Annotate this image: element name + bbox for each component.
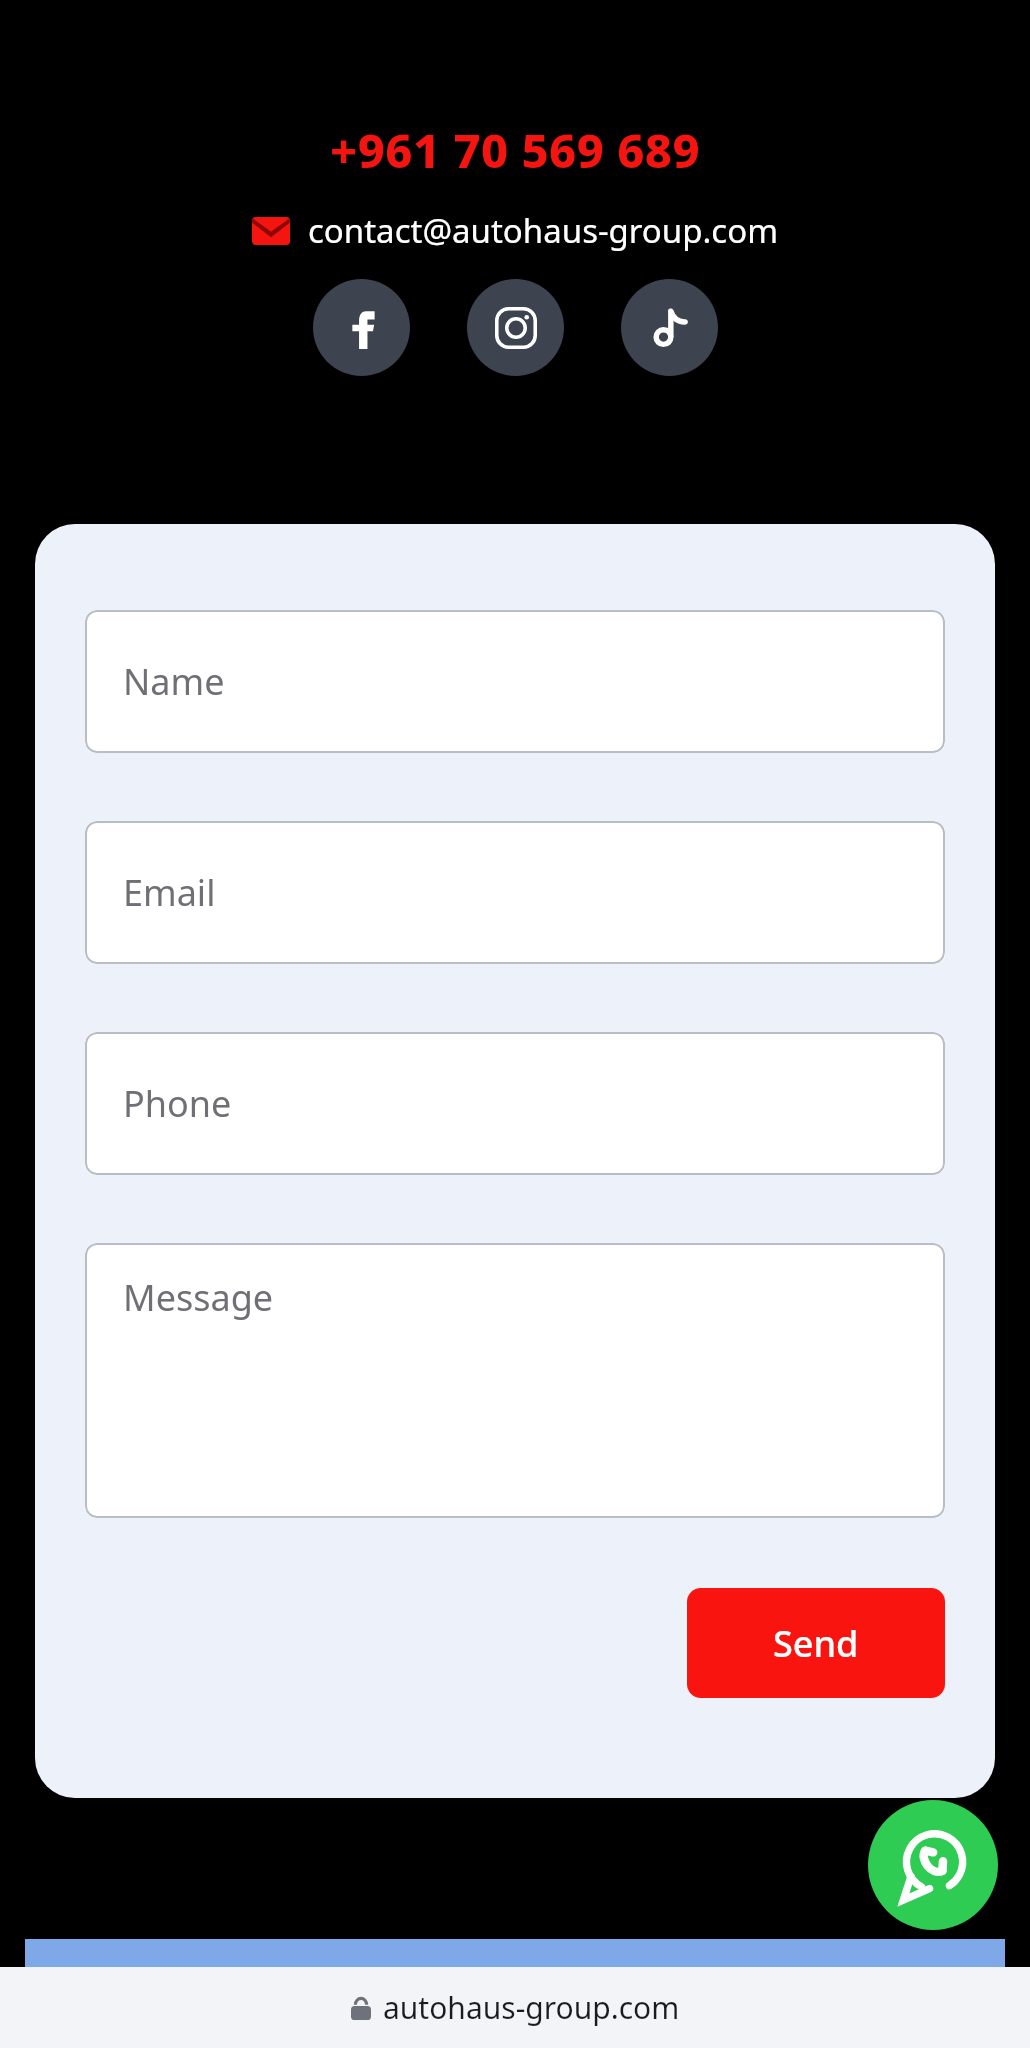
button[interactable]: Phone [85, 1032, 945, 1175]
button[interactable]: contact@autohaus-group.com [242, 204, 788, 257]
staticText: Send [773, 1619, 859, 1668]
button[interactable]: +961 70 569 689 [322, 116, 709, 184]
button[interactable]: Message [85, 1243, 945, 1518]
button[interactable]: autohaus-group.com [339, 1981, 692, 2034]
button[interactable]: Instagram [467, 279, 564, 376]
staticText: Message [123, 1273, 274, 1322]
button[interactable]: Email [85, 821, 945, 964]
button[interactable]: Name [85, 610, 945, 753]
button[interactable]: Send [687, 1588, 945, 1698]
button[interactable]: Chat on WhatsApp [868, 1800, 998, 1930]
staticText: Name [123, 657, 225, 706]
staticText: contact@autohaus-group.com [308, 208, 778, 253]
button[interactable]: TikTok [621, 279, 718, 376]
button[interactable]: Facebook [313, 279, 410, 376]
staticText: Email [123, 868, 216, 917]
staticText: +961 70 569 689 [330, 118, 701, 182]
staticText: autohaus-group.com [383, 1987, 680, 2028]
staticText: Phone [123, 1079, 232, 1128]
